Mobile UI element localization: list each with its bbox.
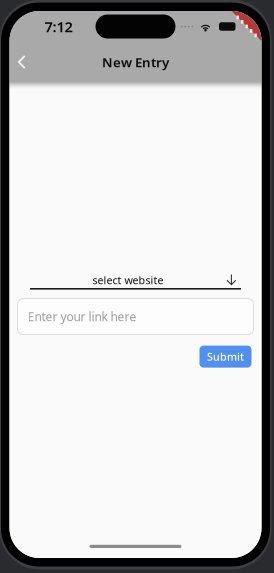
- button[interactable]: Back: [10, 45, 32, 79]
- staticText: Enter your link here: [27, 309, 136, 324]
- staticText: New Entry: [102, 53, 169, 71]
- button[interactable]: Submit: [199, 346, 251, 368]
- staticText: select website: [92, 273, 163, 287]
- staticText: 7:12: [44, 17, 72, 36]
- staticText: Submit: [207, 349, 244, 364]
- button[interactable]: select website: [30, 272, 241, 290]
